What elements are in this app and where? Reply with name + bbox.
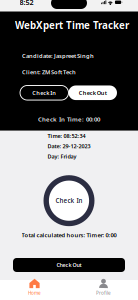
staticText: Candidate: Jaspreet Singh (22, 52, 94, 60)
button[interactable]: Profile (69, 279, 138, 296)
staticText: Check In (55, 196, 82, 205)
button[interactable]: Check Out (68, 85, 117, 100)
button[interactable]: Check In (20, 85, 68, 100)
staticText: Client: ZM Soft Tech (22, 68, 76, 76)
staticText: Profile (96, 290, 111, 296)
button[interactable]: Check Out (13, 258, 125, 272)
staticText: Check In (32, 89, 56, 97)
staticText: 8:52 (19, 0, 33, 7)
staticText: Check Out (79, 89, 107, 97)
button[interactable]: Check In (43, 175, 94, 226)
staticText: Total calculated hours: Timer: 0:00 (21, 231, 116, 239)
staticText: Home (28, 290, 41, 296)
staticText: Day: Friday (47, 153, 76, 160)
staticText: Time: 08:52:34 (47, 132, 85, 140)
button[interactable]: Home (0, 279, 69, 296)
staticText: Check In Time: 00:00 (38, 115, 100, 123)
staticText: Date: 29-12-2023 (47, 142, 90, 150)
staticText: WebXpert Time Tracker (15, 18, 129, 32)
staticText: Check Out (56, 261, 81, 269)
